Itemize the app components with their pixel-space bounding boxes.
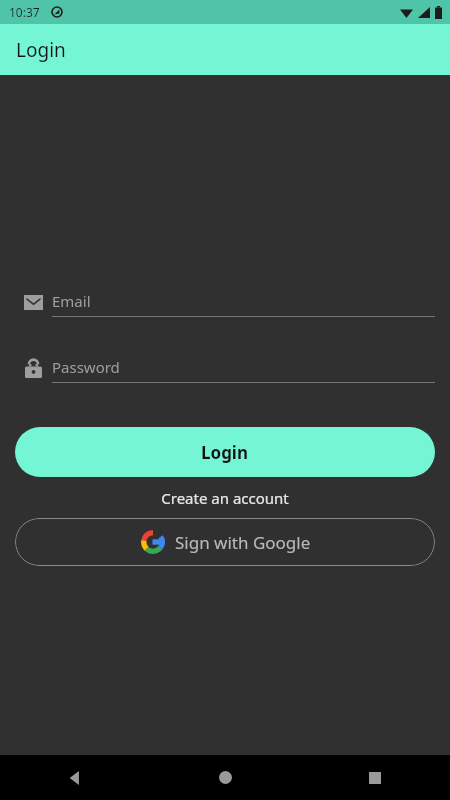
staticText: Login <box>16 37 66 63</box>
staticText: Login <box>201 441 249 464</box>
staticText: Create an account <box>161 488 289 508</box>
button[interactable]: Login <box>15 427 435 477</box>
button[interactable]: Recent apps <box>300 755 450 800</box>
button[interactable]: Password <box>15 352 435 384</box>
staticText: Email <box>52 291 91 311</box>
button[interactable]: Sign with Google <box>15 518 435 566</box>
button[interactable]: Create an account <box>0 488 450 508</box>
button[interactable]: Back <box>0 755 150 800</box>
staticText: Sign with Google <box>175 531 311 554</box>
other: Password <box>25 358 42 378</box>
staticText: 10:37 <box>9 4 40 20</box>
button[interactable]: Home <box>150 755 300 800</box>
button[interactable]: Email <box>15 286 435 318</box>
staticText: Password <box>52 357 120 377</box>
other: Email <box>24 295 43 310</box>
